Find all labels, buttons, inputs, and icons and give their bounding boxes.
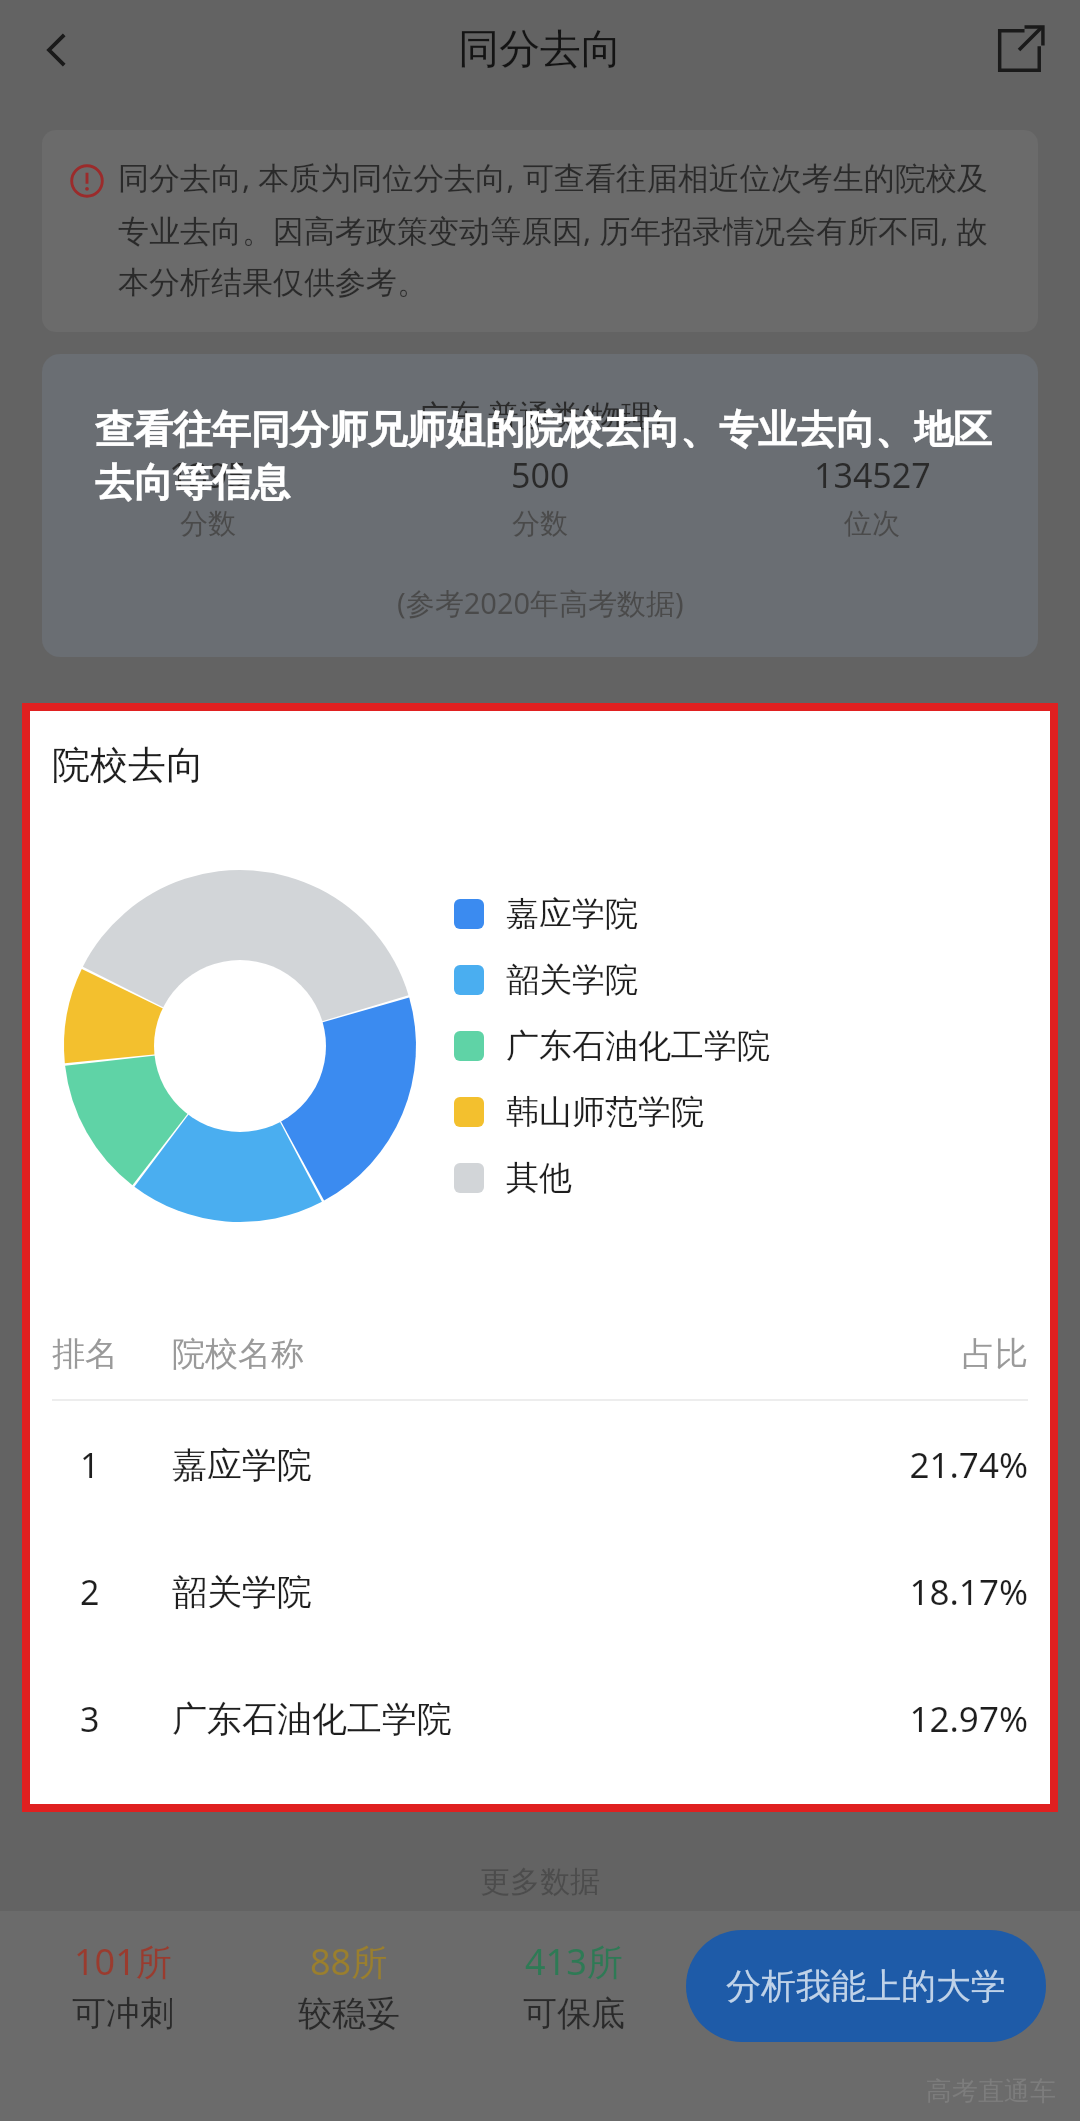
button[interactable]: 3: [52, 1655, 1028, 1782]
staticText: 可保底: [523, 1992, 625, 2035]
button[interactable]: 101所: [10, 1937, 236, 2035]
staticText: 可冲刺: [72, 1992, 174, 2035]
staticText: 更多数据: [480, 1863, 600, 1901]
staticText: 高考直通车: [926, 2075, 1056, 2108]
button[interactable]: 88所: [236, 1937, 461, 2035]
staticText: 韶关学院: [172, 1570, 909, 1614]
staticText: 21.74%: [909, 1441, 1028, 1489]
staticText: 广东 普通类(物理): [418, 394, 662, 436]
staticText: 广东石油化工学院: [506, 1025, 770, 1067]
staticText: 嘉应学院: [506, 893, 638, 935]
staticText: 查看往年同分师兄师姐的院校去向、专业去向、地区去向等信息: [95, 405, 1020, 507]
staticText: 其他: [506, 1157, 572, 1199]
staticText: 分数: [180, 506, 236, 541]
button[interactable]: Back: [18, 11, 96, 89]
staticText: 广东石油化工学院: [172, 1697, 909, 1741]
staticText: 占比: [962, 1333, 1028, 1375]
staticText: 413所: [525, 1937, 623, 1986]
button[interactable]: Share: [980, 11, 1058, 89]
staticText: 1: [80, 1442, 172, 1488]
button[interactable]: 413所: [461, 1937, 686, 2035]
staticText: 1395: [169, 452, 247, 498]
staticText: 分数: [512, 506, 568, 541]
staticText: 88所: [310, 1937, 388, 1986]
staticText: 韶关学院: [506, 959, 638, 1001]
staticText: 12.97%: [909, 1695, 1028, 1743]
staticText: 排名: [52, 1333, 172, 1375]
staticText: 较稳妥: [298, 1992, 400, 2035]
button[interactable]: 1: [52, 1401, 1028, 1528]
button[interactable]: 韶关学院: [454, 947, 1050, 1013]
staticText: 院校去向: [52, 741, 204, 789]
staticText: 院校名称: [172, 1333, 962, 1375]
button[interactable]: 韩山师范学院: [454, 1079, 1050, 1145]
button[interactable]: 嘉应学院: [454, 881, 1050, 947]
staticText: 韩山师范学院: [506, 1091, 704, 1133]
button[interactable]: 2: [52, 1528, 1028, 1655]
button[interactable]: 广东石油化工学院: [454, 1013, 1050, 1079]
staticText: 101所: [74, 1937, 172, 1986]
staticText: 2: [80, 1569, 172, 1615]
button[interactable]: 院校去向: [30, 711, 1050, 1804]
staticText: 位次: [844, 506, 900, 541]
button[interactable]: 分析我能上的大学: [686, 1930, 1046, 2042]
staticText: (参考2020年高考数据): [397, 583, 684, 623]
staticText: 嘉应学院: [172, 1443, 909, 1487]
button[interactable]: 其他: [454, 1145, 1050, 1211]
staticText: 同分去向: [458, 24, 622, 76]
staticText: 分析我能上的大学: [726, 1964, 1006, 2008]
staticText: 18.17%: [909, 1568, 1028, 1616]
staticText: 3: [80, 1696, 172, 1742]
staticText: 500: [511, 452, 570, 498]
staticText: 同分去向, 本质为同位分去向, 可查看往届相近位次考生的院校及专业去向。因高考政…: [118, 156, 1010, 302]
staticText: 134527: [814, 452, 931, 498]
